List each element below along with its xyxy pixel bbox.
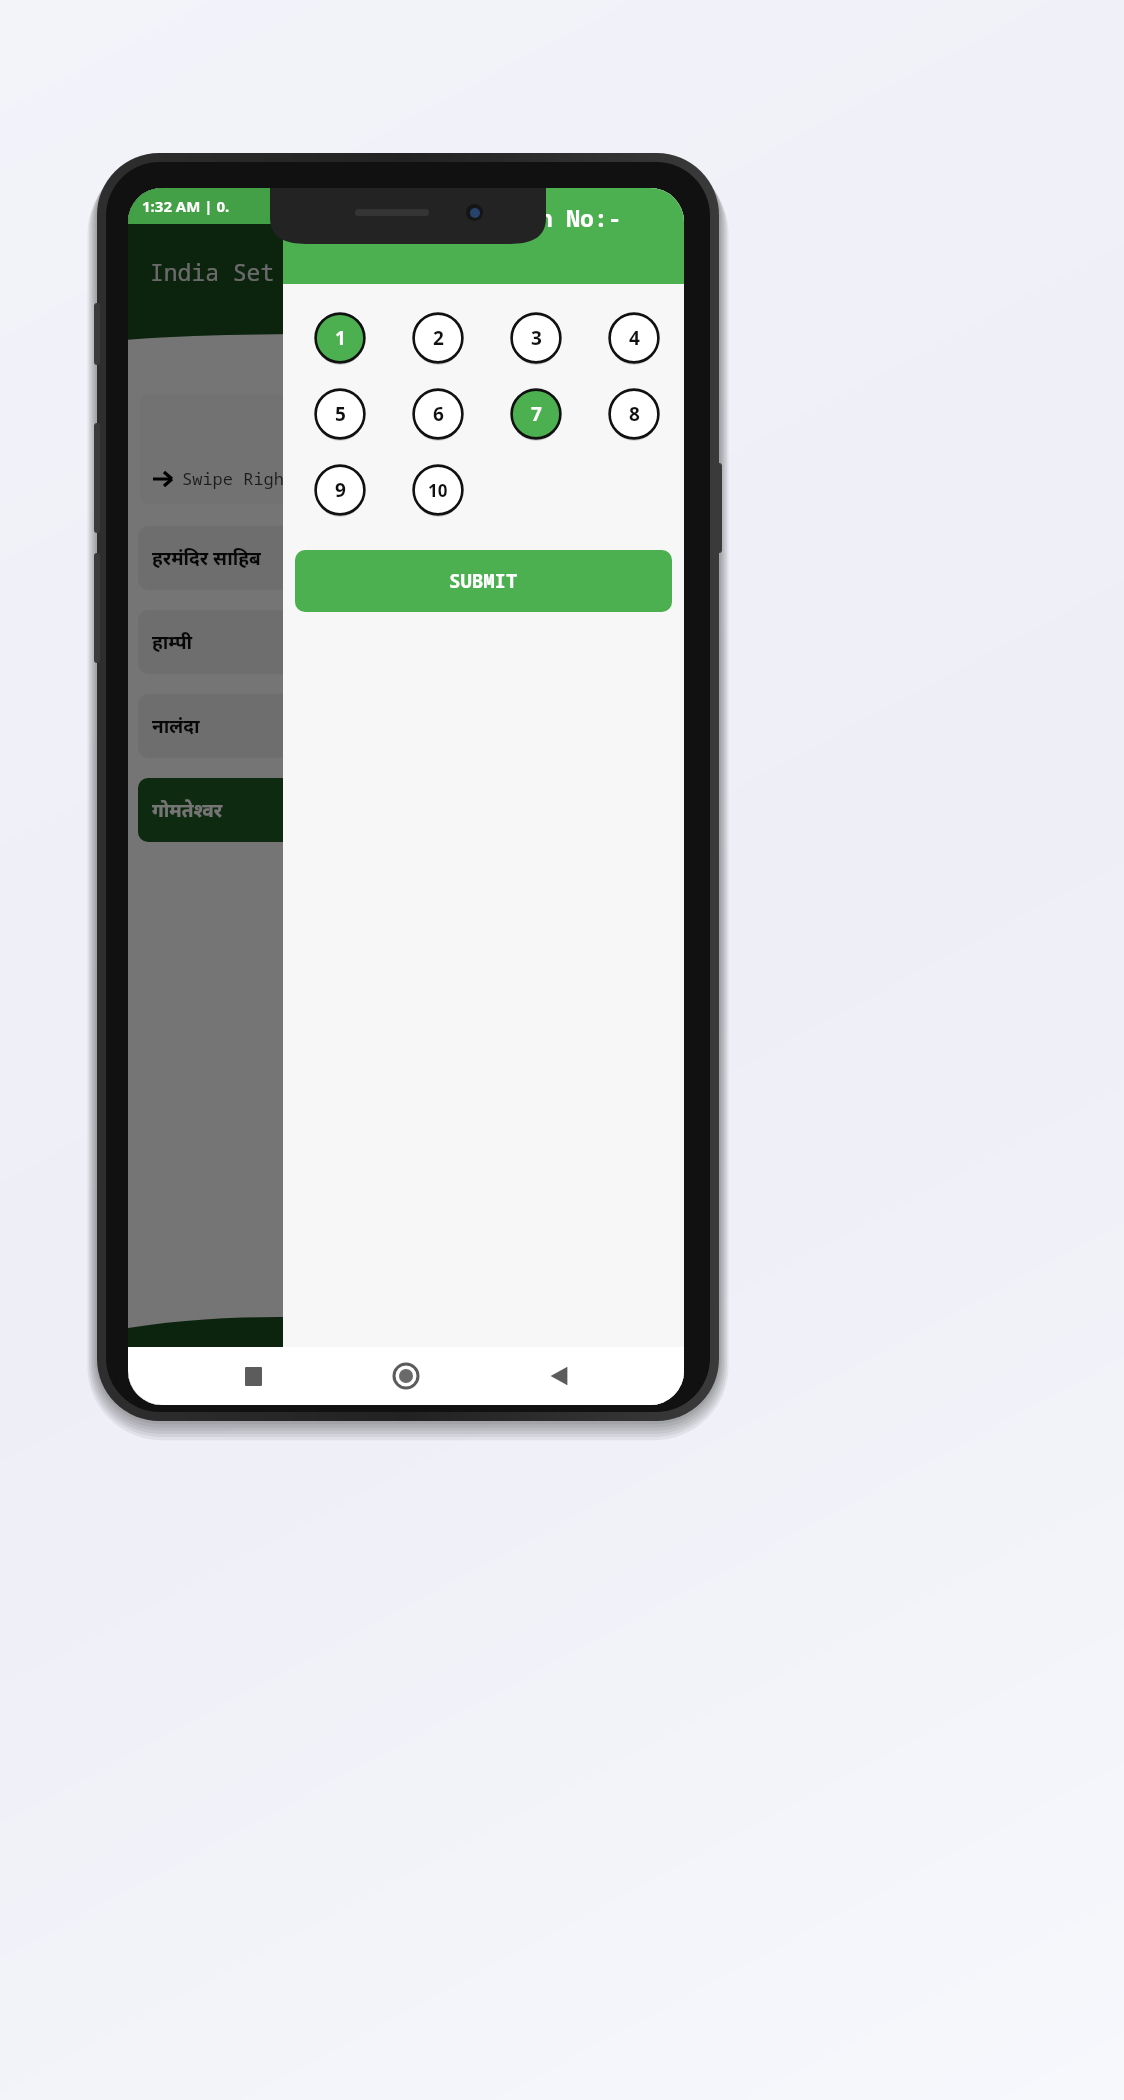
button[interactable]: 6 (389, 376, 487, 452)
staticText: India Set (150, 256, 275, 287)
staticText: SUBMIT (449, 568, 518, 594)
staticText: 2 (433, 325, 444, 351)
staticText: 7 (531, 401, 542, 427)
staticText: 10 (428, 479, 448, 502)
button[interactable]: 3 (487, 300, 585, 376)
button[interactable]: 7 (487, 376, 585, 452)
button[interactable]: 10 (389, 452, 487, 528)
staticText: 4 (629, 325, 640, 351)
staticText: 3 (531, 325, 542, 351)
staticText: 6 (433, 401, 444, 427)
button[interactable]: 9 (291, 452, 389, 528)
button[interactable]: Recents (225, 1348, 281, 1404)
staticText: Select Question No:- (345, 202, 622, 233)
staticText: नालंदा (152, 713, 200, 739)
staticText: Swipe Right (182, 467, 295, 490)
staticText: 8 (629, 401, 640, 427)
button[interactable]: 4 (585, 300, 683, 376)
staticText: 5 (335, 401, 346, 427)
button[interactable]: गोमतेश्वर (138, 778, 674, 842)
staticText: हाम्पी (152, 629, 193, 655)
button[interactable]: 8 (585, 376, 683, 452)
button[interactable]: Back (531, 1348, 587, 1404)
staticText: भारत (386, 424, 427, 450)
button[interactable]: 1 (291, 300, 389, 376)
staticText: गोमतेश्वर (152, 797, 223, 823)
staticText: हरमंदिर साहिब (152, 545, 261, 571)
button[interactable]: नालंदा (138, 694, 674, 758)
staticText: 1:32 AM | 0. (142, 196, 230, 216)
staticText: 1:32 AM | 0. (142, 196, 230, 216)
staticText: 1 (335, 325, 346, 351)
button[interactable]: हाम्पी (138, 610, 674, 674)
staticText: 9 (335, 477, 346, 503)
button[interactable]: 5 (291, 376, 389, 452)
button[interactable]: हरमंदिर साहिब (138, 526, 674, 590)
button[interactable]: 2 (389, 300, 487, 376)
button[interactable]: SUBMIT (295, 550, 672, 612)
button[interactable]: Home (378, 1348, 434, 1404)
